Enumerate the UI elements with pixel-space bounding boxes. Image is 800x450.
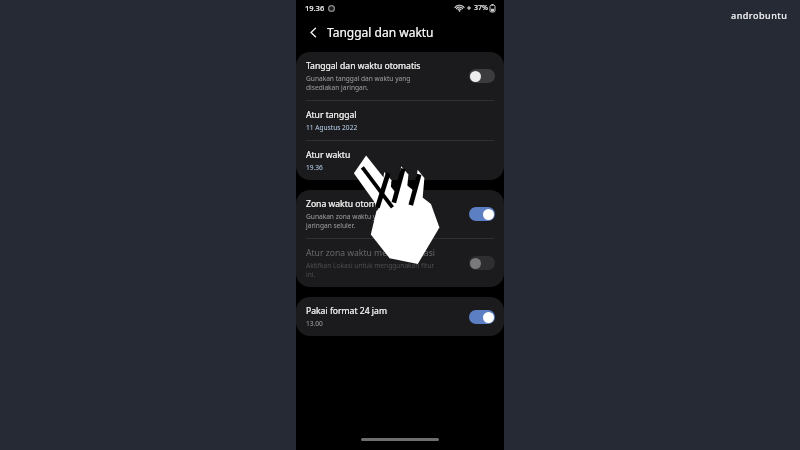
button[interactable]: Toggle [469,256,495,270]
staticText: Tanggal dan waktu otomatis [306,60,421,72]
button[interactable]: Atur waktu [296,141,504,180]
button[interactable]: Back [304,23,322,41]
button[interactable]: Atur tanggal [296,101,504,140]
staticText: Atur waktu [306,149,351,161]
staticText: 13.00 [306,319,323,328]
staticText: androbuntu [731,9,788,21]
button[interactable]: Atur zona waktu menurut lokasi [296,239,504,287]
staticText: 19.36 [305,3,325,13]
staticText: 19.36 [306,163,323,172]
staticText: 11 Agustus 2022 [306,123,358,132]
button[interactable]: Toggle [469,310,495,324]
button[interactable]: Tanggal dan waktu otomatis [296,52,504,100]
staticText: Gunakan tanggal dan waktu yang disediaka… [306,74,411,92]
button[interactable]: Pakai format 24 jam [296,297,504,336]
staticText: Gunakan zona waktu yang disediakan jarin… [306,212,424,230]
staticText: Atur zona waktu menurut lokasi [306,247,435,259]
staticText: Atur tanggal [306,109,357,121]
button[interactable]: Toggle [469,69,495,83]
button[interactable]: Toggle [469,207,495,221]
staticText: Zona waktu otomatis [306,198,392,210]
staticText: 37% [474,3,488,13]
staticText: Tanggal dan waktu [327,24,434,40]
button[interactable]: Zona waktu otomatis [296,190,504,238]
staticText: Pakai format 24 jam [306,305,387,317]
staticText: Aktifkan Lokasi untuk menggunakan fitur … [306,261,435,279]
